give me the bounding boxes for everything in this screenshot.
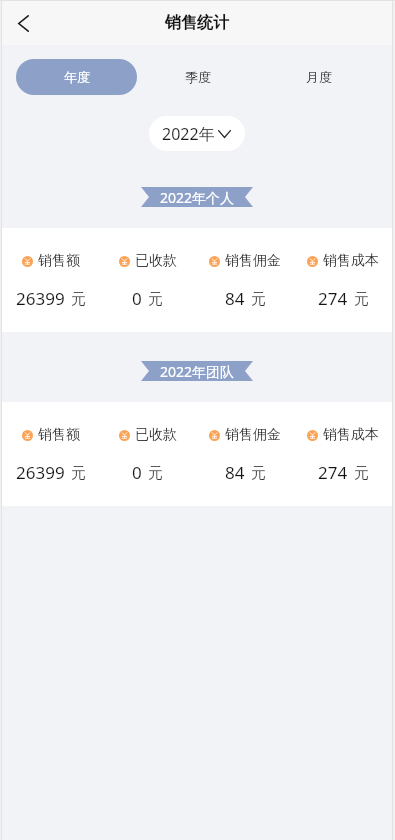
staticText: 2022年团队 <box>160 362 235 381</box>
staticText: 元 <box>71 464 86 483</box>
staticText: 销售统计 <box>165 13 229 33</box>
staticText: 已收款 <box>135 252 177 270</box>
staticText: 销售成本 <box>323 426 379 444</box>
button[interactable]: 月度 <box>258 59 379 95</box>
button[interactable]: 年度 <box>16 59 137 95</box>
staticText: 元 <box>251 464 266 483</box>
staticText: 销售佣金 <box>225 252 281 270</box>
staticText: 销售佣金 <box>225 426 281 444</box>
staticText: 销售额 <box>38 252 80 270</box>
staticText: 26399 <box>16 461 65 484</box>
staticText: 26399 <box>16 287 65 310</box>
staticText: 元 <box>148 464 163 483</box>
staticText: 0 <box>132 287 142 310</box>
button[interactable]: 季度 <box>137 59 258 95</box>
staticText: 销售额 <box>38 426 80 444</box>
staticText: 元 <box>148 290 163 309</box>
staticText: 季度 <box>185 69 211 85</box>
staticText: 274 <box>318 461 348 484</box>
staticText: 2022年 <box>162 123 215 145</box>
staticText: 84 <box>225 287 245 310</box>
staticText: 0 <box>132 461 142 484</box>
staticText: 销售成本 <box>323 252 379 270</box>
staticText: 84 <box>225 461 245 484</box>
staticText: 元 <box>354 464 369 483</box>
staticText: 月度 <box>306 69 332 85</box>
staticText: 元 <box>71 290 86 309</box>
staticText: 274 <box>318 287 348 310</box>
staticText: 元 <box>251 290 266 309</box>
staticText: 年度 <box>64 69 90 85</box>
button[interactable]: 2022年 <box>149 116 245 151</box>
staticText: 已收款 <box>135 426 177 444</box>
staticText: 元 <box>354 290 369 309</box>
staticText: 2022年个人 <box>160 188 235 207</box>
button[interactable]: Back <box>2 2 44 44</box>
